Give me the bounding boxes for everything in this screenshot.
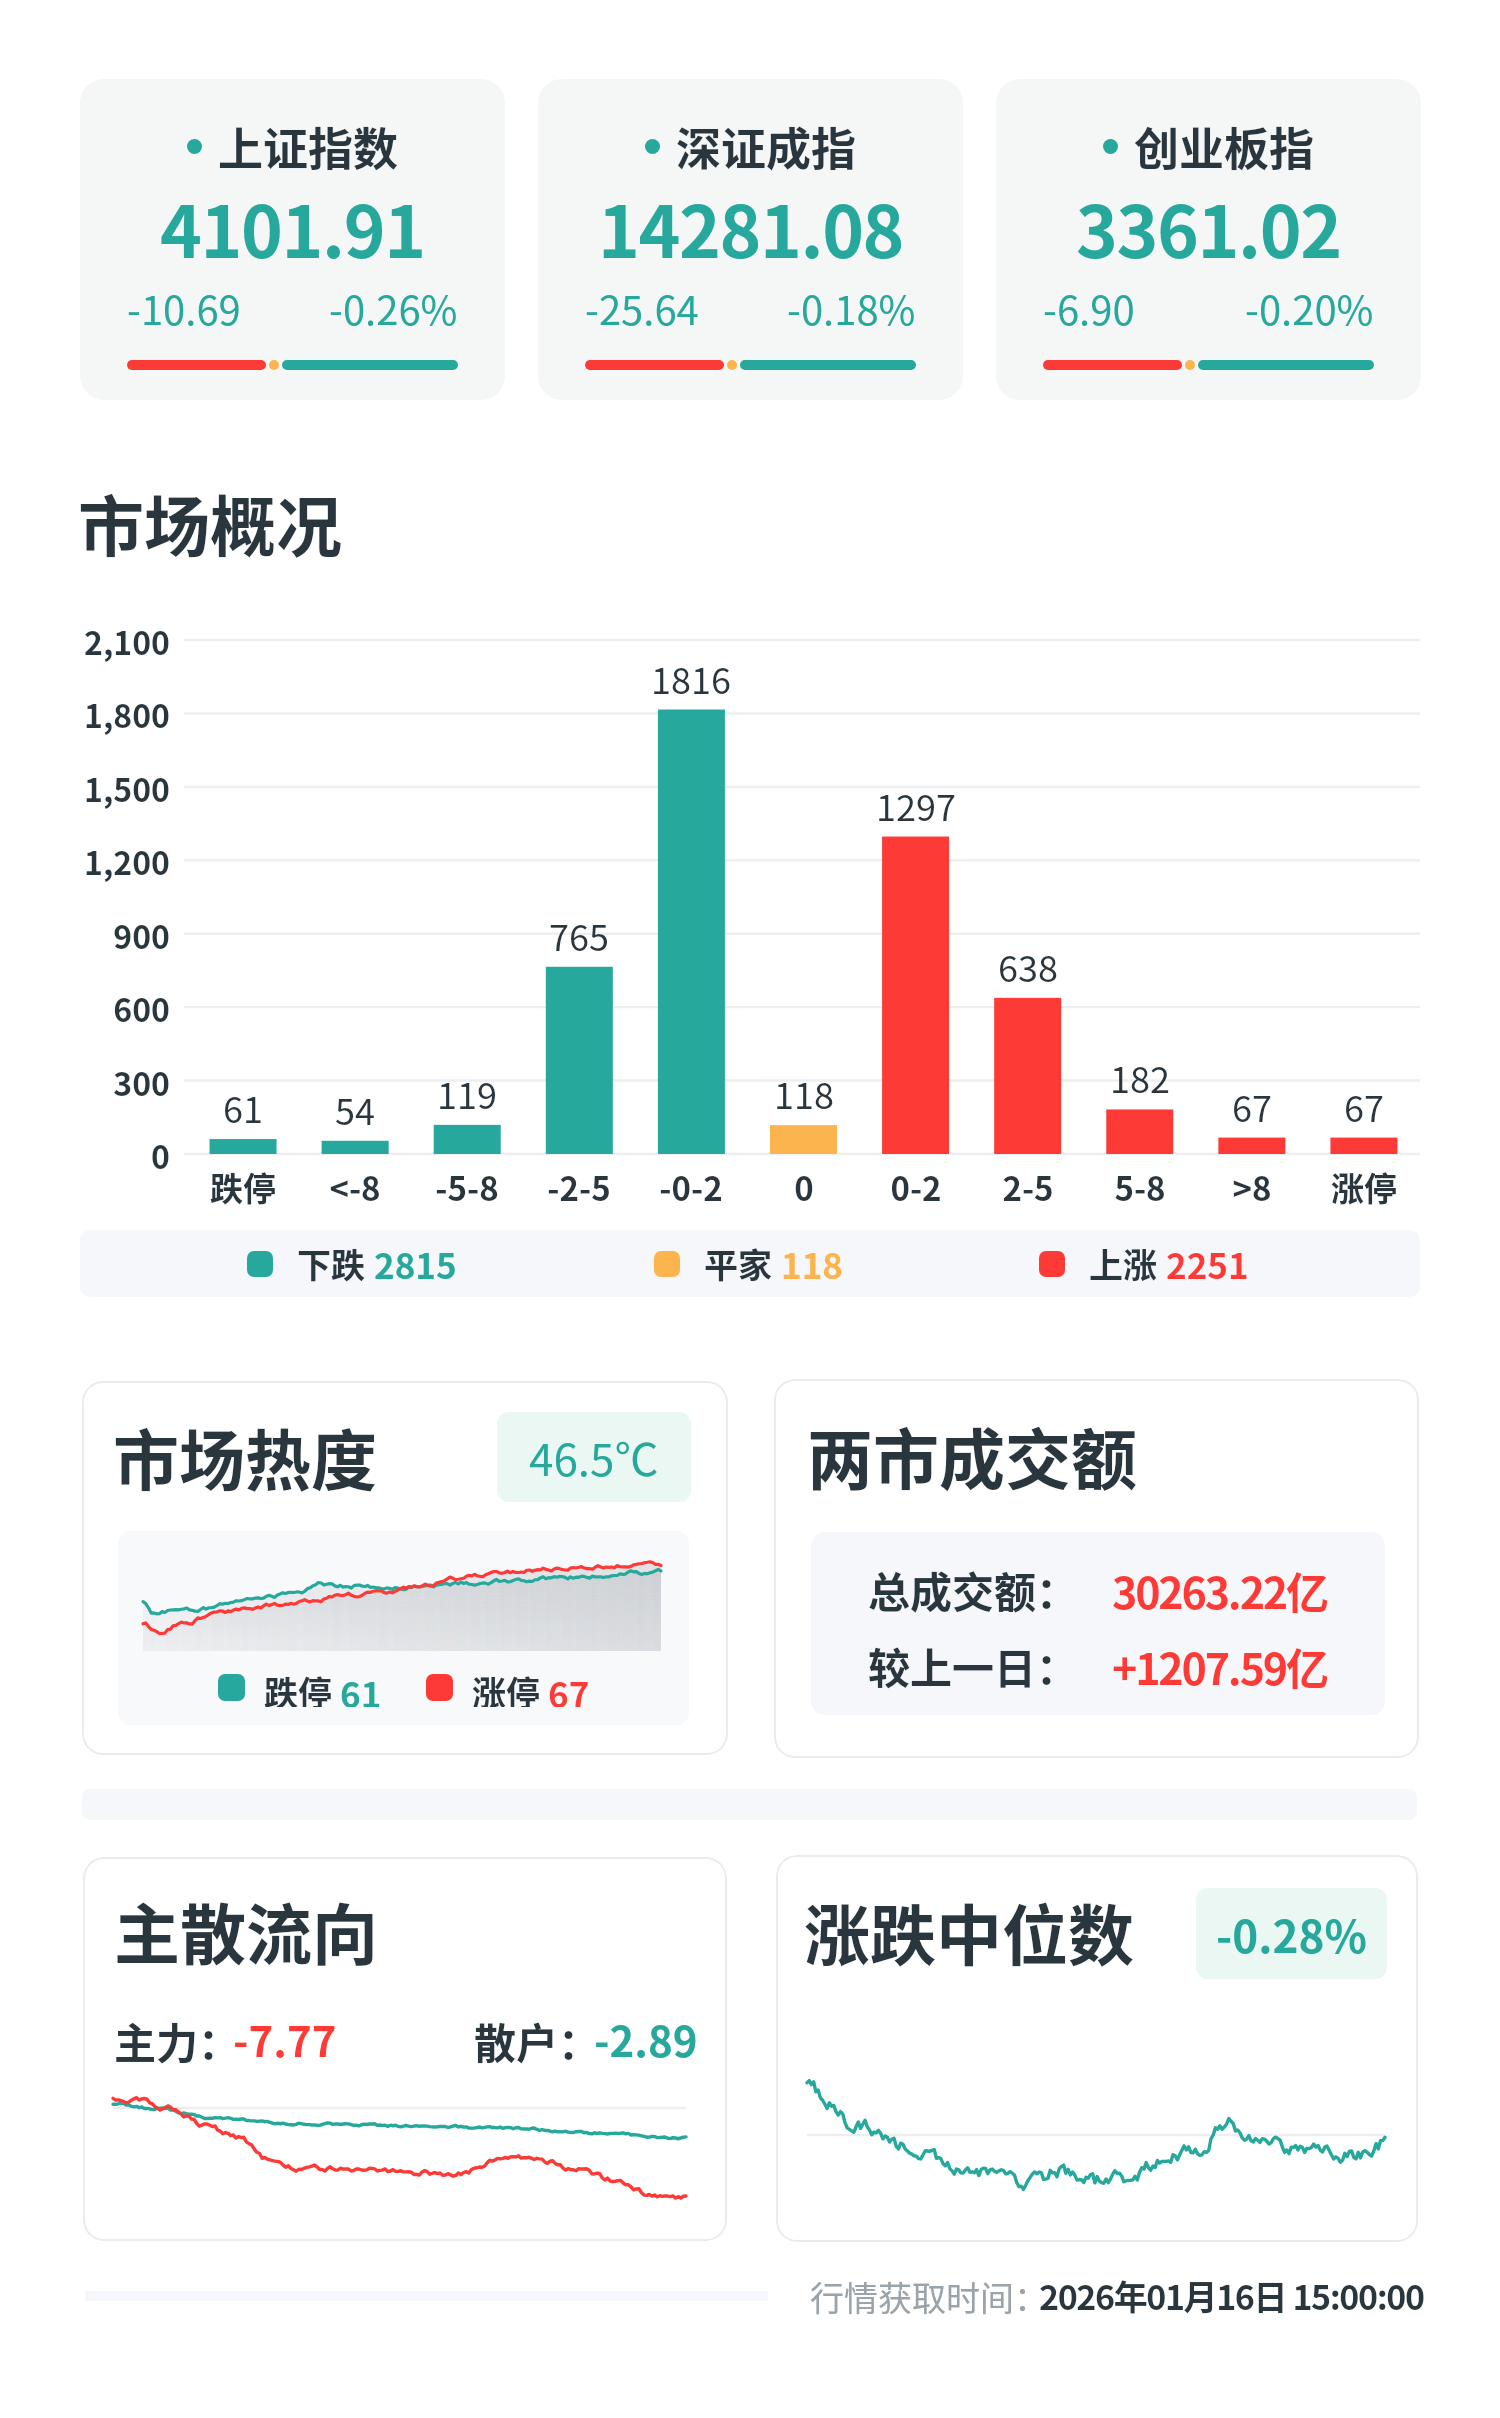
staticText: 30263.22亿	[1112, 1559, 1327, 1621]
staticText: 散户：	[474, 2010, 601, 2071]
staticText: 跌停	[264, 1667, 332, 1707]
staticText: -2-5	[499, 1163, 659, 1211]
staticText: -0.20%	[1245, 279, 1374, 337]
staticText: >8	[1172, 1163, 1332, 1211]
staticText: 跌停	[163, 1163, 323, 1211]
staticText: 182	[1060, 1051, 1220, 1103]
staticText: 1,800	[0, 691, 170, 737]
staticText: 46.5℃	[529, 1425, 659, 1489]
staticText: 行情获取时间：	[810, 2272, 1048, 2321]
staticText: 5-8	[1060, 1163, 1220, 1211]
staticText: -6.90	[1043, 279, 1135, 337]
staticText: 主力：	[114, 2010, 241, 2071]
staticText: -0.18%	[787, 279, 916, 337]
staticText: 上涨	[1089, 1239, 1157, 1288]
staticText: 两市成交额	[807, 1407, 1137, 1503]
staticText: 2026年01月16日 15:00:00	[1039, 2271, 1424, 2320]
button[interactable]: 平家	[618, 1235, 878, 1292]
staticText: 0	[724, 1163, 884, 1211]
staticText: -7.77	[233, 2008, 337, 2069]
staticText: 平家	[704, 1239, 772, 1288]
staticText: 900	[0, 912, 170, 958]
staticText: -0-2	[611, 1163, 771, 1211]
staticText: -0.28%	[1216, 1902, 1367, 1966]
staticText: 67	[1172, 1080, 1332, 1132]
staticText: -10.69	[127, 279, 241, 337]
staticText: 1297	[836, 779, 996, 831]
staticText: -5-8	[387, 1163, 547, 1211]
staticText: 14281.08	[598, 176, 904, 279]
staticText: 300	[0, 1059, 170, 1105]
staticText: 较上一日：	[868, 1635, 1079, 1696]
staticText: 600	[0, 985, 170, 1031]
staticText: 67	[548, 1667, 590, 1707]
staticText: 0	[0, 1132, 170, 1178]
staticText: 涨跌中位数	[804, 1883, 1134, 1979]
staticText: 1,200	[0, 838, 170, 884]
button[interactable]: 市场热度	[82, 1381, 728, 1755]
staticText: 638	[948, 940, 1108, 992]
staticText: -2.89	[594, 2008, 698, 2069]
staticText: 上证指数	[218, 114, 399, 179]
staticText: <-8	[275, 1163, 435, 1211]
staticText: 总成交额：	[868, 1559, 1079, 1620]
staticText: 涨停	[1284, 1163, 1444, 1211]
button[interactable]: 上涨	[1014, 1235, 1274, 1292]
staticText: 61	[163, 1081, 323, 1133]
button[interactable]: 涨跌中位数	[776, 1855, 1418, 2242]
staticText: 765	[499, 909, 659, 961]
staticText: 2815	[374, 1238, 457, 1289]
staticText: 61	[340, 1667, 382, 1707]
button[interactable]: 主散流向	[83, 1857, 727, 2241]
staticText: 1,500	[0, 765, 170, 811]
staticText: 118	[781, 1238, 843, 1289]
staticText: 54	[275, 1083, 435, 1135]
staticText: -0.26%	[329, 279, 458, 337]
staticText: 深证成指	[676, 114, 857, 179]
button[interactable]: 上证指数	[80, 79, 505, 400]
button[interactable]: 两市成交额	[774, 1379, 1419, 1758]
staticText: 118	[724, 1067, 884, 1119]
staticText: 主散流向	[114, 1882, 378, 1978]
staticText: 2-5	[948, 1163, 1108, 1211]
button[interactable]: 下跌	[222, 1235, 482, 1292]
staticText: 0-2	[836, 1163, 996, 1211]
staticText: 4101.91	[160, 176, 425, 279]
staticText: -25.64	[585, 279, 699, 337]
button[interactable]: 深证成指	[538, 79, 963, 400]
staticText: 2,100	[0, 618, 170, 664]
staticText: 2251	[1166, 1238, 1249, 1289]
staticText: 1816	[611, 652, 771, 704]
button[interactable]: 创业板指	[996, 79, 1421, 400]
staticText: +1207.59亿	[1112, 1635, 1327, 1697]
staticText: 创业板指	[1134, 114, 1315, 179]
staticText: 下跌	[297, 1239, 365, 1288]
staticText: 67	[1284, 1080, 1444, 1132]
staticText: 涨停	[472, 1667, 540, 1707]
staticText: 3361.02	[1076, 176, 1341, 279]
staticText: 119	[387, 1067, 547, 1119]
staticText: 市场概况	[78, 474, 342, 570]
staticText: 市场热度	[113, 1408, 377, 1504]
